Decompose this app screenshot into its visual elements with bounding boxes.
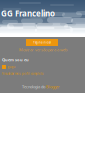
- button[interactable]: Página inicial: [26, 39, 58, 46]
- staticText: GG Francelino: [1, 8, 55, 19]
- button[interactable]: Visualizar meu perfil completo: [2, 72, 44, 75]
- button[interactable]: Mostrar versão para a web: [19, 47, 67, 52]
- staticText: Mostrar versão para a web: [19, 47, 67, 52]
- staticText: Tecnologia do: [22, 84, 46, 89]
- staticText: Página inicial: [33, 41, 51, 44]
- staticText: gugu: [7, 65, 15, 69]
- staticText: Quem sou eu: [2, 57, 29, 62]
- staticText: Visualizar meu perfil completo: [2, 72, 44, 75]
- staticText: Blogger: [46, 84, 60, 89]
